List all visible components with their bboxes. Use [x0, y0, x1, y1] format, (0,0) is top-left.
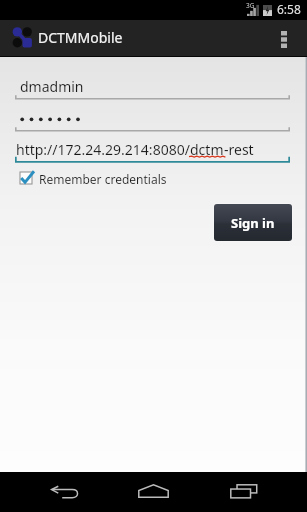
button[interactable]: More options — [271, 20, 297, 57]
button[interactable]: Recent apps — [214, 472, 272, 512]
button[interactable]: Home — [124, 472, 182, 512]
staticText: dctm — [190, 140, 224, 159]
button[interactable]: Remember credentials — [18, 170, 167, 186]
staticText: -rest — [224, 140, 254, 159]
button[interactable]: Sign in — [214, 204, 292, 241]
staticText: 3G — [246, 1, 255, 10]
button[interactable]: Back — [35, 472, 93, 512]
staticText: Remember credentials — [39, 171, 167, 187]
staticText: DCTMMobile — [38, 28, 123, 47]
staticText: dmadmin — [20, 77, 84, 96]
staticText: http://172.24.29.214:8080/ — [16, 140, 190, 159]
staticText: 6:58 — [277, 1, 301, 17]
staticText: Sign in — [231, 214, 275, 232]
